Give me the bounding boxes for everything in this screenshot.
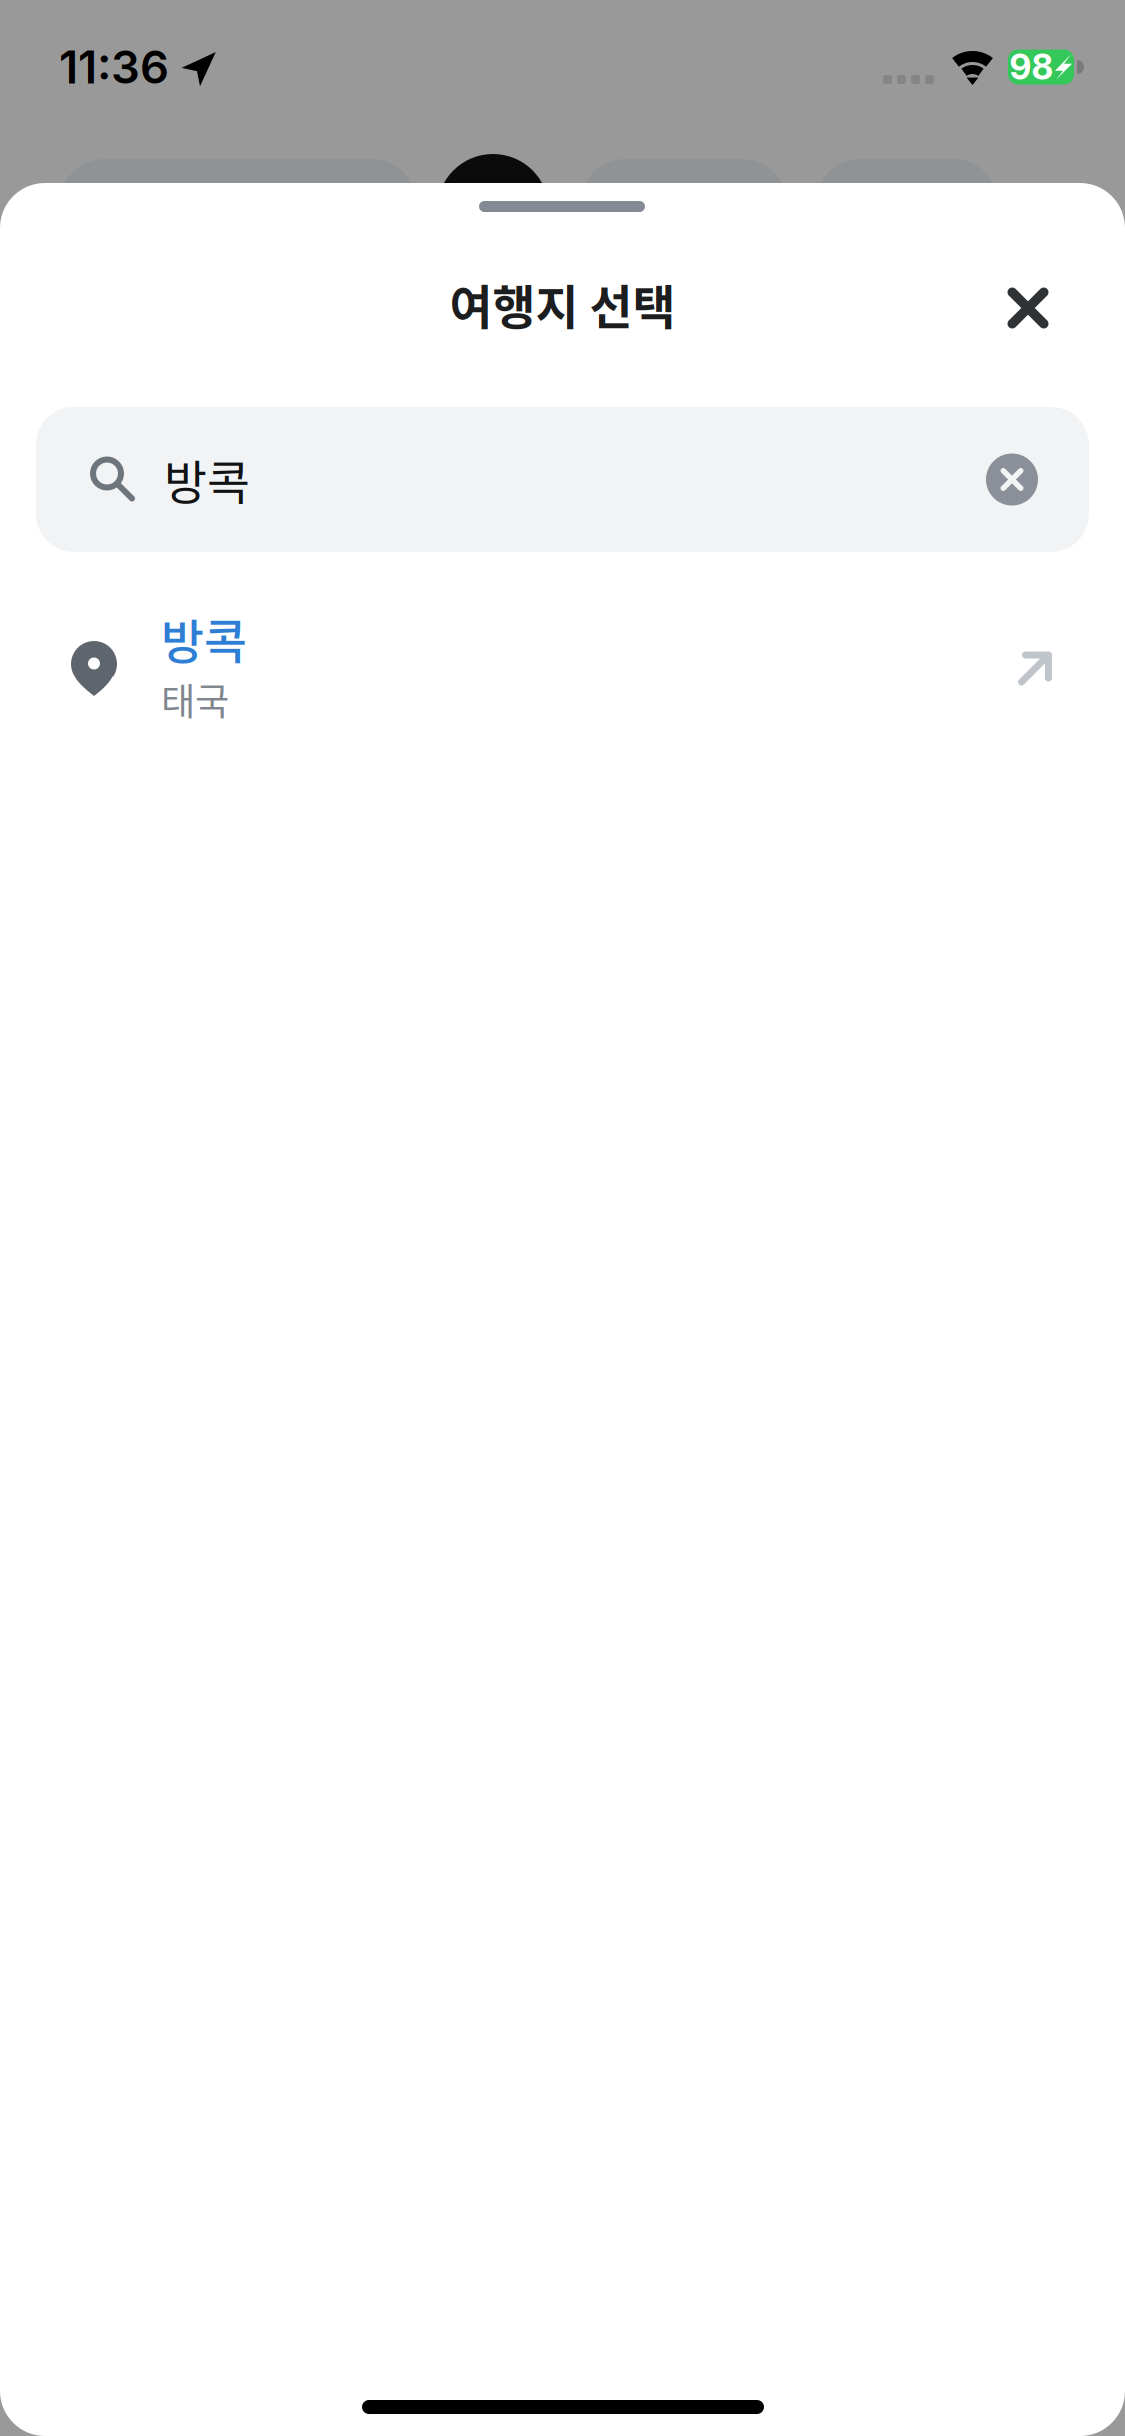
staticText: 여행지 선택 [449, 270, 675, 338]
staticText: 태국 [161, 672, 229, 726]
button[interactable]: Clear search text [935, 407, 1089, 552]
button[interactable]: Close [978, 258, 1078, 358]
staticText: 11:36 [59, 40, 169, 94]
staticText: 방콕 [164, 446, 250, 513]
staticText: 방콕 [161, 605, 247, 672]
staticText: 98 [1009, 46, 1053, 88]
button[interactable]: 방콕 [0, 593, 1125, 738]
